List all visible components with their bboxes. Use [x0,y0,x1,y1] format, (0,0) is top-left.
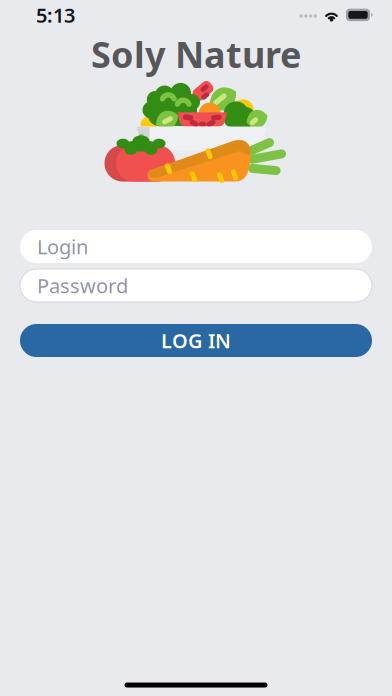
staticText: LOG IN [161,327,231,354]
staticText: Login [37,233,88,260]
button[interactable]: Login [20,230,372,263]
button[interactable]: Password [20,269,372,302]
staticText: 5:13 [36,2,75,28]
staticText: Soly Nature [91,30,301,78]
staticText: Password [37,272,128,299]
button[interactable]: LOG IN [20,324,372,357]
